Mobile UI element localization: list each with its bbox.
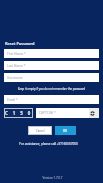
- staticText: Cancel: [36, 129, 45, 133]
- staticText: Version 1.7.0.7: [1, 176, 103, 180]
- staticText: Keep it empty if you do not remember the…: [4, 87, 99, 91]
- staticText: First Name *: [7, 52, 26, 56]
- staticText: Last Name *: [7, 64, 26, 68]
- staticText: For assistance, please call +97165567000: [1, 142, 96, 146]
- button[interactable]: Cancel: [29, 127, 51, 134]
- button[interactable]: Email *: [4, 95, 99, 104]
- staticText: OK: [63, 129, 68, 133]
- staticText: C 1 5 0: [5, 110, 33, 116]
- button[interactable]: Username: [4, 73, 99, 82]
- staticText: Email *: [7, 98, 18, 102]
- staticText: Reset Password: [5, 41, 35, 46]
- button[interactable]: First Name *: [4, 49, 99, 58]
- button[interactable]: OK: [55, 126, 76, 135]
- button[interactable]: CAPTCHA *: [36, 108, 89, 118]
- button[interactable]: Refresh captcha: [89, 108, 99, 118]
- staticText: CAPTCHA *: [39, 111, 56, 115]
- button[interactable]: Last Name *: [4, 61, 99, 70]
- staticText: Username: [7, 76, 23, 80]
